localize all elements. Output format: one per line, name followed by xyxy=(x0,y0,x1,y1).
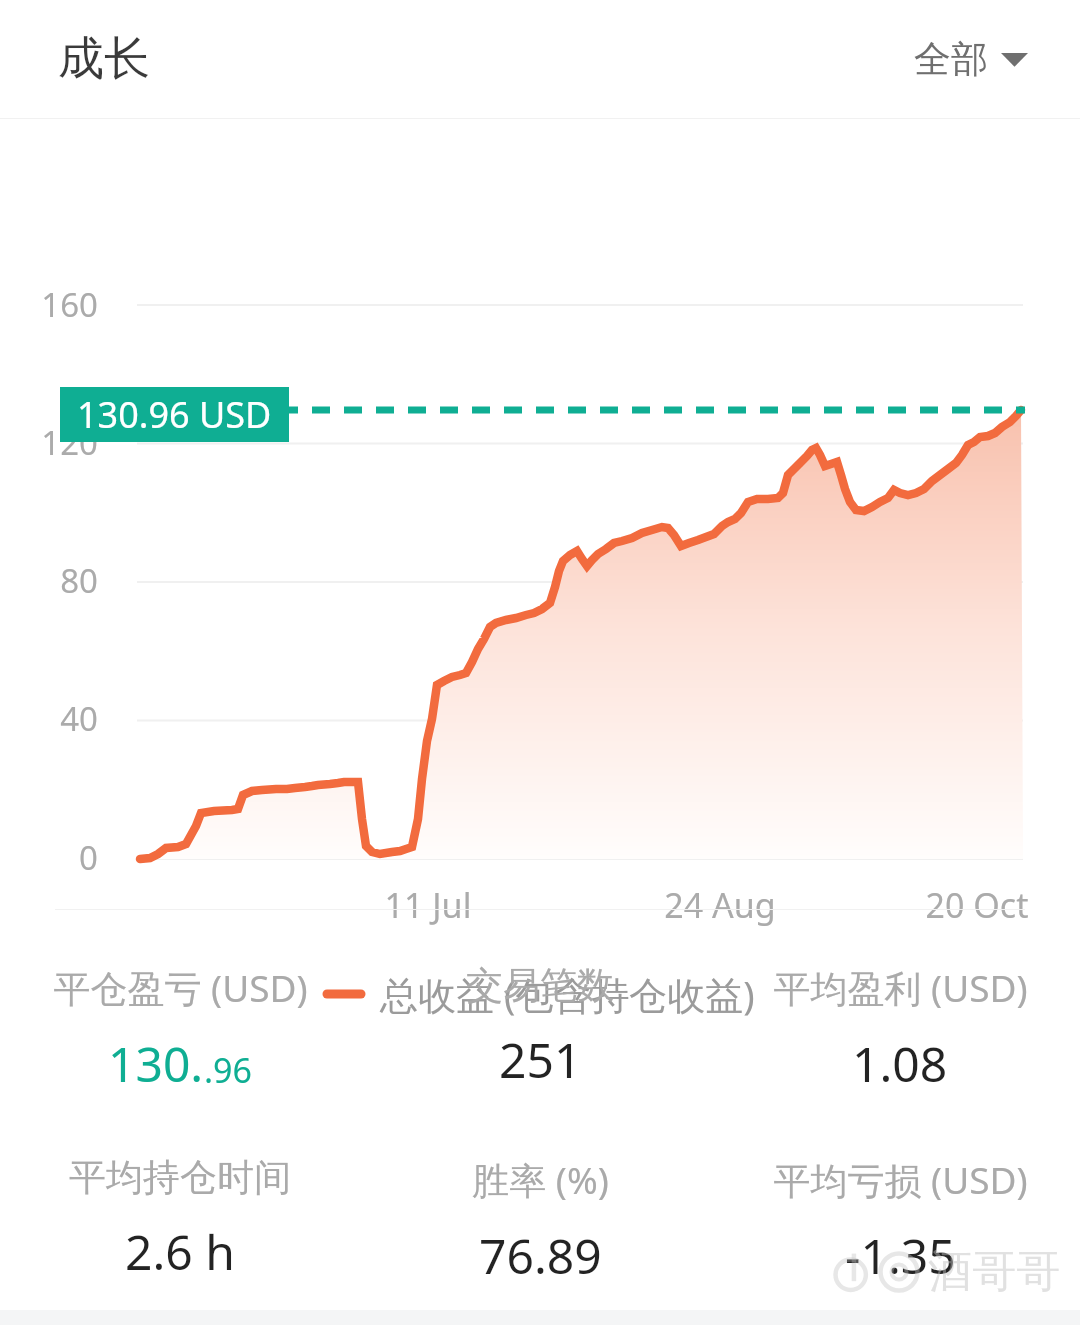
staticText: 76.89 xyxy=(479,1223,602,1288)
staticText: 1.08 xyxy=(852,1031,948,1096)
button[interactable]: 130.96 USD xyxy=(60,387,289,442)
staticText: 平均盈利 (USD) xyxy=(773,962,1028,1013)
staticText: 160 xyxy=(0,282,98,327)
staticText: 总收益 (包含持仓收益) xyxy=(380,968,755,1020)
staticText: 酒哥哥 xyxy=(928,1244,1060,1299)
button[interactable]: 总收益 (包含持仓收益) xyxy=(320,962,761,1026)
staticText: 平均亏损 (USD) xyxy=(773,1154,1028,1205)
button[interactable]: 成长 xyxy=(0,24,162,94)
button[interactable]: 平均亏损 (USD) xyxy=(720,1150,1080,1292)
staticText: .96 xyxy=(204,1047,253,1093)
staticText: 130. xyxy=(108,1031,204,1096)
button[interactable]: 交易笔数 xyxy=(360,958,720,1096)
staticText: 251 xyxy=(499,1027,582,1092)
staticText: 80 xyxy=(0,558,98,603)
button[interactable]: 平仓盈亏 (USD) xyxy=(0,958,360,1100)
staticText: -1.35 xyxy=(845,1223,956,1288)
button[interactable]: 平均持仓时间 xyxy=(0,1150,360,1288)
staticText: 2.6 h xyxy=(125,1219,235,1284)
staticText: 平均持仓时间 xyxy=(69,1154,291,1201)
staticText: 全部 xyxy=(914,36,988,83)
staticText: 130.96 USD xyxy=(77,390,272,439)
other: Watermark xyxy=(830,1244,1080,1325)
staticText: 24 Aug xyxy=(630,882,810,928)
staticText: 11 Jul xyxy=(338,882,518,928)
button[interactable]: 胜率 (%) xyxy=(360,1150,720,1292)
staticText: 胜率 (%) xyxy=(472,1154,609,1205)
staticText: 40 xyxy=(0,696,98,741)
staticText: 交易笔数 xyxy=(466,962,614,1009)
staticText: 平仓盈亏 (USD) xyxy=(53,962,308,1013)
button[interactable]: 全部 xyxy=(894,26,1080,93)
staticText: 120 xyxy=(0,420,98,465)
button[interactable]: 平均盈利 (USD) xyxy=(720,958,1080,1100)
staticText: 20 Oct xyxy=(887,882,1067,928)
staticText: 0 xyxy=(0,835,98,880)
